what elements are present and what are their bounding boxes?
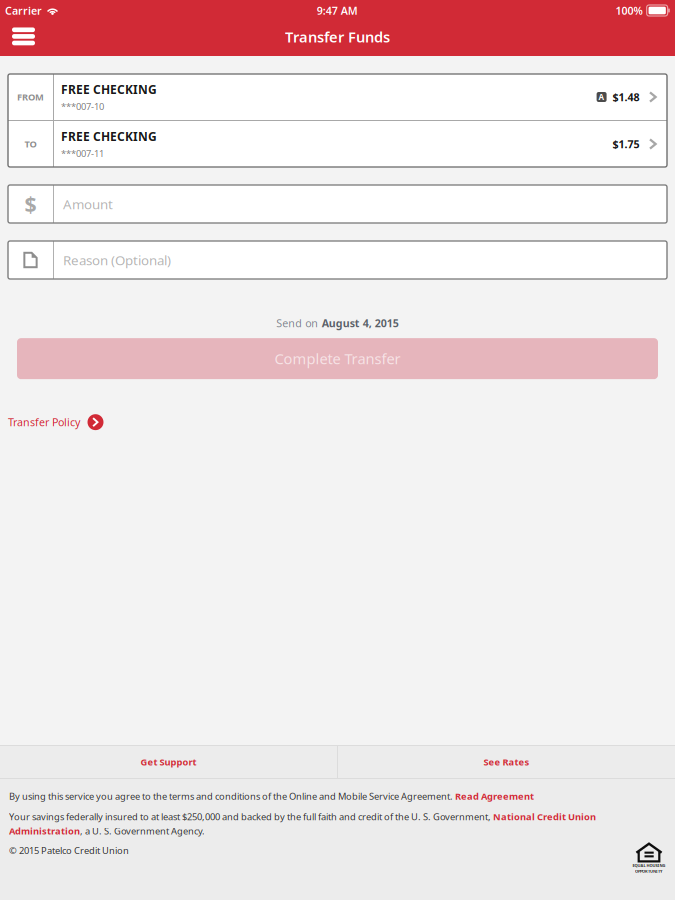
staticText: $ <box>24 190 36 218</box>
staticText: , a U. S. Government Agency. <box>80 825 205 837</box>
button[interactable]: Reason (Optional) <box>8 241 667 279</box>
staticText: Amount <box>63 195 113 213</box>
staticText: Carrier <box>5 3 42 18</box>
staticText: FROM <box>17 91 44 103</box>
staticText: 9:47 AM <box>317 3 358 18</box>
staticText: OPPORTUNITY <box>635 869 663 874</box>
staticText: © 2015 Patelco Credit Union <box>9 844 129 857</box>
staticText: Transfer Policy <box>8 415 80 429</box>
button[interactable]: See Rates <box>338 746 675 778</box>
button[interactable]: Get Support <box>0 746 337 778</box>
staticText: TO <box>24 138 36 150</box>
staticText: National Credit Union <box>493 810 596 823</box>
button[interactable]: Menu <box>0 21 44 55</box>
button[interactable]: Complete Transfer <box>17 338 658 379</box>
staticText: Reason (Optional) <box>63 251 171 269</box>
staticText: A <box>599 92 605 102</box>
staticText: ***007-11 <box>61 147 104 160</box>
button[interactable]: Transfer Policy <box>8 414 103 430</box>
button[interactable]: TO <box>8 121 667 167</box>
staticText: Send on <box>276 316 318 330</box>
staticText: $1.75 <box>613 137 640 151</box>
staticText: Read Agreement <box>455 790 534 802</box>
staticText: FREE CHECKING <box>61 128 157 144</box>
staticText: 100% <box>615 3 642 18</box>
staticText: August 4, 2015 <box>322 316 399 330</box>
staticText: By using this service you agree to the t… <box>9 790 455 802</box>
staticText: FREE CHECKING <box>61 81 157 97</box>
staticText: $1.48 <box>613 90 640 104</box>
staticText: Transfer Funds <box>285 27 390 46</box>
staticText: See Rates <box>483 756 529 768</box>
staticText: Your savings federally insured to at lea… <box>9 810 493 823</box>
staticText: Administration <box>9 825 80 837</box>
staticText: Complete Transfer <box>274 349 400 368</box>
staticText: ***007-10 <box>61 100 104 113</box>
button[interactable]: $ <box>8 185 667 223</box>
button[interactable]: FROM <box>8 74 667 120</box>
staticText: Get Support <box>140 756 196 768</box>
staticText: EQUAL HOUSING <box>632 863 665 868</box>
